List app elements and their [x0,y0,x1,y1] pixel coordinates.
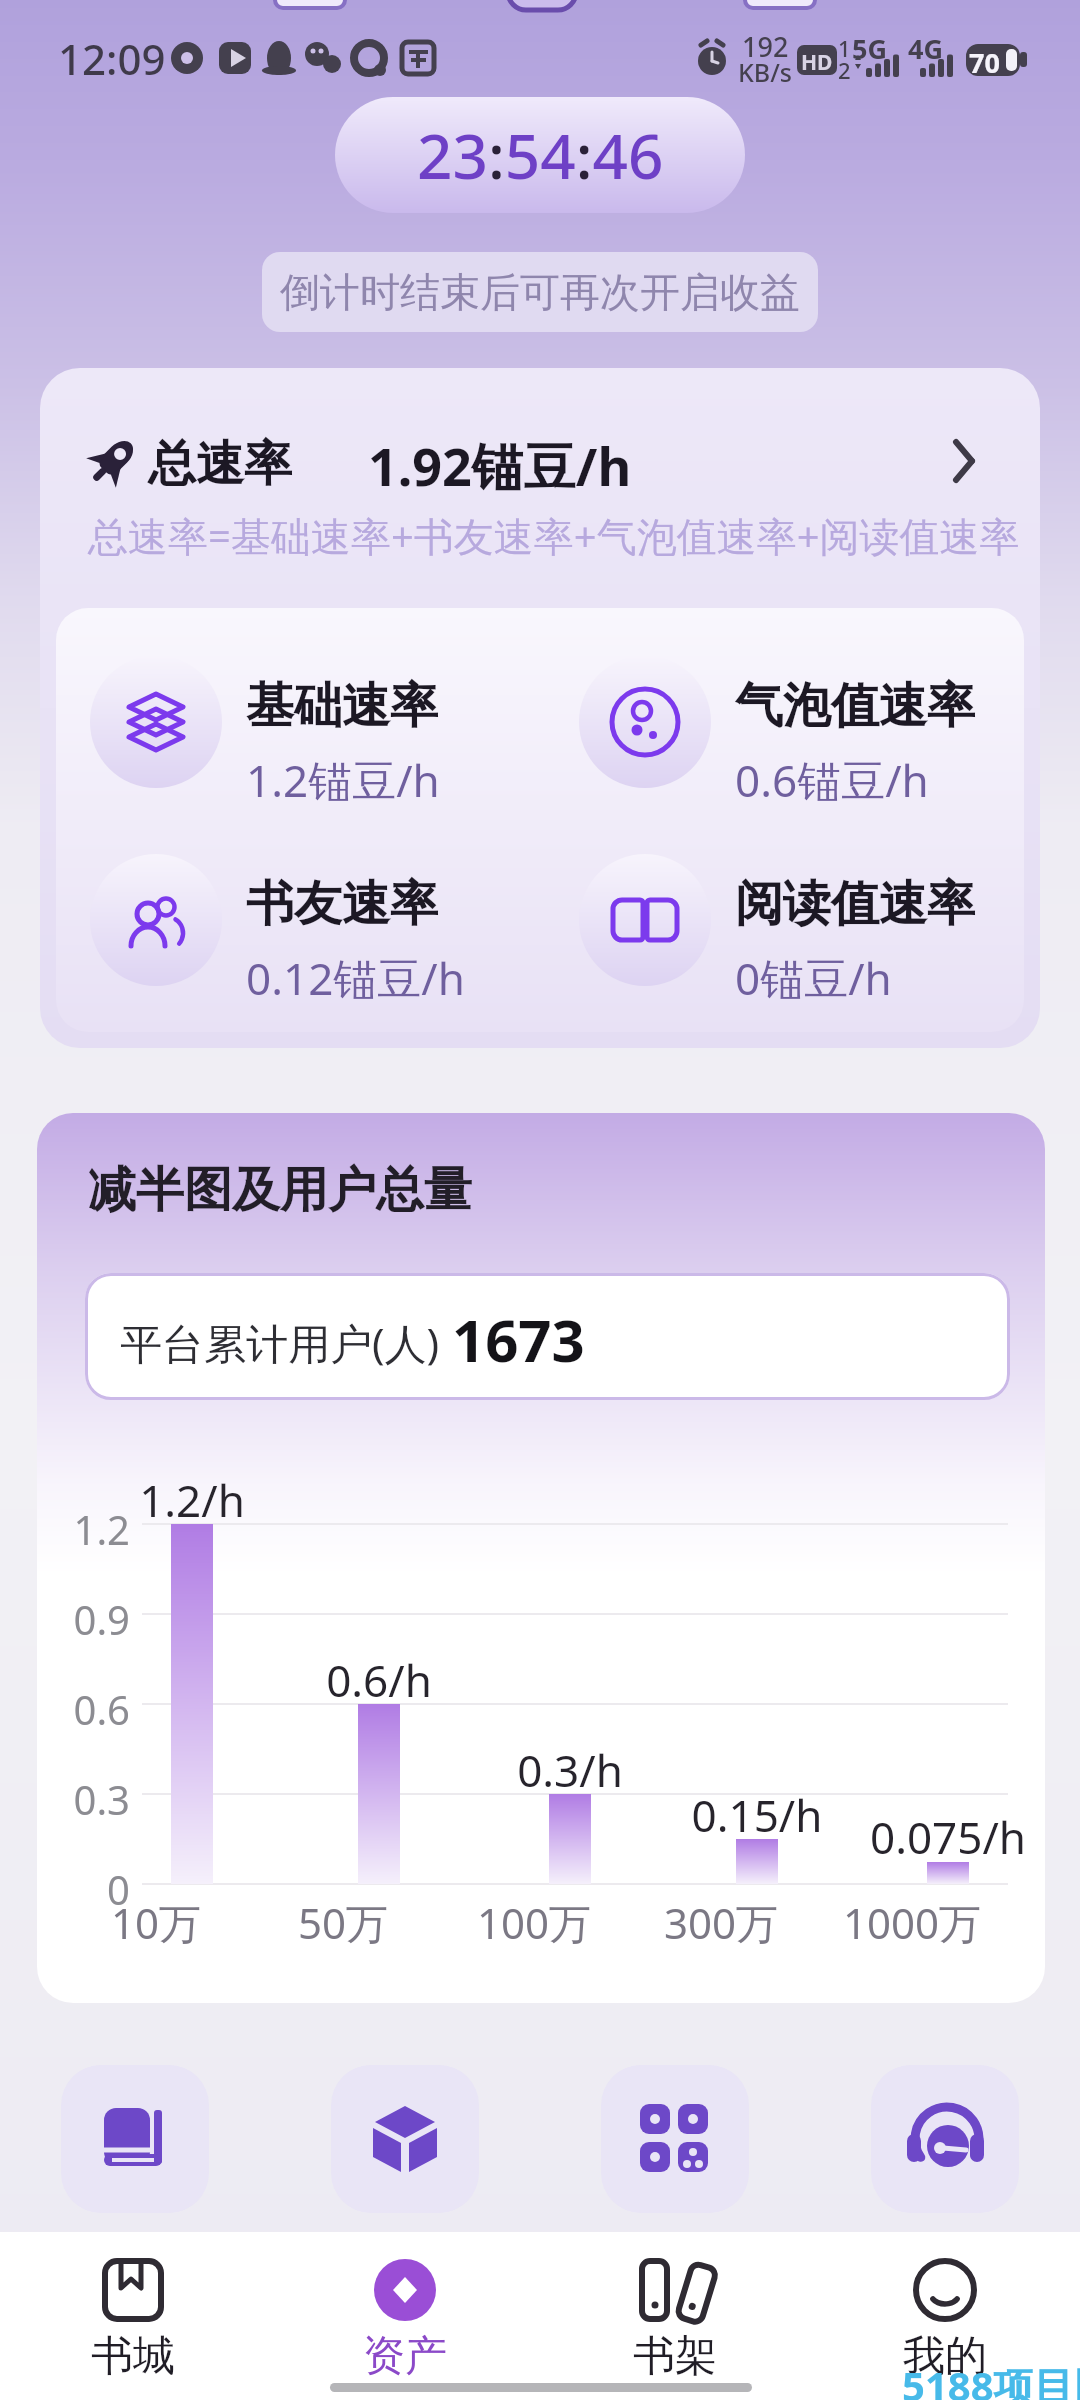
staticText: 气泡值速率 [735,676,975,736]
staticText: 50万 [263,1894,423,1951]
staticText: 10万 [76,1894,236,1951]
staticText: 1.2/h [112,1470,272,1530]
staticText: 0锚豆/h [735,948,892,1008]
staticText: 300万 [641,1894,801,1951]
staticText: 0.3 [48,1772,130,1826]
staticText: 书城 [91,2330,175,2383]
staticText: 书架 [633,2330,717,2383]
staticText: 12:09 [58,30,166,87]
staticText: 5188项目网 [902,2358,1080,2400]
button[interactable] [585,2240,765,2390]
staticText: 1.2 [48,1502,130,1556]
staticText: HD [801,48,833,77]
button[interactable] [61,2065,209,2213]
staticText: 100万 [454,1894,614,1951]
staticText: 基础速率 [246,676,438,736]
staticText: 1 [838,33,851,63]
staticText: 资产 [363,2330,447,2383]
button[interactable] [60,420,1020,510]
staticText: 2 [838,55,851,85]
staticText: 23:54:46 [417,113,664,197]
button[interactable] [855,2240,1035,2390]
staticText: 0.15/h [677,1785,837,1845]
staticText: KB/s [738,55,792,89]
staticText: 0.6 [48,1682,130,1736]
button[interactable] [43,2240,223,2390]
staticText: 书友速率 [246,874,438,934]
staticText: 192 [742,28,789,65]
staticText: 1.2锚豆/h [246,750,440,810]
button[interactable] [331,2065,479,2213]
staticText: 0.3/h [490,1740,650,1800]
button[interactable] [871,2065,1019,2213]
staticText: 0.9 [48,1592,130,1646]
staticText: 4G [908,30,943,67]
staticText: 0.6锚豆/h [735,750,929,810]
staticText: 1673 [452,1300,585,1379]
button[interactable] [315,2240,495,2390]
staticText: 5G [852,30,887,67]
button[interactable] [601,2065,749,2213]
staticText: 0.12锚豆/h [246,948,465,1008]
staticText: 减半图及用户总量 [88,1160,472,1220]
staticText: 1000万 [832,1894,992,1951]
staticText: 1.92锚豆/h [368,430,632,501]
staticText: 阅读值速率 [735,874,975,934]
staticText: 70 [969,44,1000,81]
staticText: 总速率=基础速率+书友速率+气泡值速率+阅读值速率 [88,508,1020,563]
staticText: 我的 [903,2330,987,2383]
staticText: 平台累计用户(人) [120,1314,440,1371]
staticText: 总速率 [148,434,292,494]
staticText: 0.075/h [858,1807,1038,1867]
staticText: 0 [48,1862,130,1916]
staticText: 倒计时结束后可再次开启收益 [280,267,800,317]
staticText: 0.6/h [299,1650,459,1710]
